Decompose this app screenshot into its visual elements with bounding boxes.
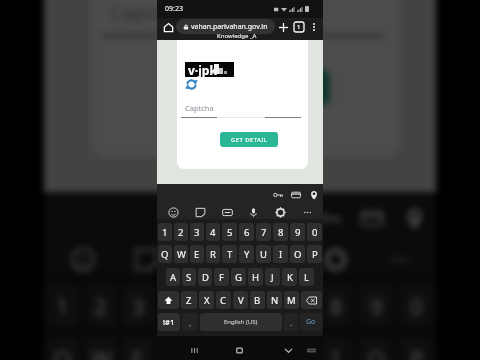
button[interactable]: U [256, 245, 271, 263]
button[interactable]: O [290, 245, 305, 263]
button[interactable]: Addresses [398, 202, 429, 232]
button[interactable]: !#1 [158, 313, 180, 331]
button[interactable]: Go [300, 313, 322, 331]
button[interactable]: More options [307, 20, 320, 33]
button[interactable]: N [267, 291, 282, 309]
button[interactable]: 1 [46, 284, 79, 327]
button[interactable]: O [358, 336, 393, 360]
button[interactable]: Payment cards [289, 188, 302, 201]
button[interactable]: A [166, 268, 180, 286]
button[interactable]: Y [238, 336, 273, 360]
button[interactable]: F [214, 268, 229, 286]
button[interactable]: Tabs [291, 19, 307, 35]
button[interactable]: W [174, 245, 188, 263]
button[interactable]: Home [160, 19, 176, 35]
button[interactable]: 8 [273, 223, 288, 241]
staticText: T [227, 248, 233, 261]
button[interactable]: Passwords [313, 202, 344, 232]
button[interactable]: 3 [122, 284, 155, 327]
button[interactable]: 7 [256, 223, 271, 241]
button[interactable]: P [398, 336, 433, 360]
button[interactable]: Settings [273, 205, 287, 219]
button[interactable]: 3 [190, 223, 204, 241]
button[interactable]: Z [181, 291, 197, 309]
button[interactable]: Addresses [307, 188, 320, 201]
button[interactable]: S [182, 268, 196, 286]
button[interactable]: Refresh captcha [185, 78, 198, 91]
button[interactable]: R [206, 245, 220, 263]
button[interactable]: 9 [358, 284, 393, 327]
staticText: 3 [131, 291, 146, 322]
button[interactable]: I [273, 245, 288, 263]
button[interactable]: Hide keyboard [281, 343, 295, 357]
button[interactable]: 8 [318, 284, 353, 327]
button[interactable]: Emoji [166, 205, 180, 219]
button[interactable]: Q [158, 245, 172, 263]
button[interactable]: , [182, 313, 198, 331]
button[interactable]: 6 [238, 284, 273, 327]
button[interactable]: Home [232, 343, 246, 357]
button[interactable]: Emoji [65, 242, 98, 275]
button[interactable]: Voice input [246, 205, 260, 219]
button[interactable]: E [122, 336, 155, 360]
button[interactable]: C [216, 291, 231, 309]
button[interactable]: W [84, 336, 117, 360]
button[interactable]: 0 [307, 223, 322, 241]
button[interactable]: vahan.parivahan.gov.in [176, 19, 275, 34]
button[interactable]: B [250, 291, 265, 309]
button[interactable]: T [222, 245, 237, 263]
button[interactable]: 4 [160, 284, 193, 327]
button[interactable]: J [265, 268, 280, 286]
button[interactable]: P [307, 245, 322, 263]
button[interactable]: GET DETAIL [220, 132, 278, 147]
button[interactable]: 2 [174, 223, 188, 241]
button[interactable]: 1 [158, 223, 172, 241]
button[interactable]: G [231, 268, 246, 286]
button[interactable]: Stickers [193, 205, 207, 219]
button[interactable]: 7 [278, 284, 313, 327]
button[interactable]: U [278, 336, 313, 360]
button[interactable]: 6 [239, 223, 254, 241]
button[interactable]: K [282, 268, 297, 286]
button[interactable]: L [299, 268, 314, 286]
button[interactable]: V [233, 291, 248, 309]
button[interactable]: . [284, 313, 298, 331]
button[interactable]: Clipboard [193, 242, 226, 275]
button[interactable]: Payment cards [356, 202, 386, 232]
button[interactable]: Q [46, 336, 79, 360]
button[interactable]: H [248, 268, 263, 286]
button[interactable]: 9 [290, 223, 305, 241]
button[interactable]: Shift [158, 291, 179, 309]
button[interactable]: Clipboard [220, 205, 234, 219]
button[interactable]: Voice input [254, 242, 287, 275]
button[interactable]: R [160, 336, 193, 360]
button[interactable]: Settings [318, 242, 351, 275]
button[interactable]: More [300, 205, 314, 219]
button[interactable]: GET DETAIL [193, 70, 330, 105]
button[interactable]: Backspace [301, 291, 322, 309]
button[interactable]: X [199, 291, 214, 309]
button[interactable]: Switch keyboard [305, 344, 317, 356]
button[interactable]: 0 [398, 284, 433, 327]
staticText: 4 [169, 291, 183, 322]
button[interactable]: New tab [275, 19, 291, 35]
button[interactable]: English (US) [200, 313, 282, 331]
button[interactable]: E [190, 245, 204, 263]
button[interactable]: 2 [84, 284, 117, 327]
button[interactable]: Stickers [129, 242, 162, 275]
staticText: E [131, 343, 146, 360]
button[interactable]: M [284, 291, 299, 309]
button[interactable]: Recent apps [187, 343, 201, 357]
button[interactable]: 4 [206, 223, 220, 241]
button[interactable]: Y [239, 245, 254, 263]
button[interactable]: 5 [222, 223, 237, 241]
button[interactable]: 5 [197, 284, 233, 327]
button[interactable]: I [318, 336, 353, 360]
staticText: R [210, 248, 216, 261]
button[interactable]: Passwords [271, 188, 284, 201]
button[interactable]: D [198, 268, 212, 286]
